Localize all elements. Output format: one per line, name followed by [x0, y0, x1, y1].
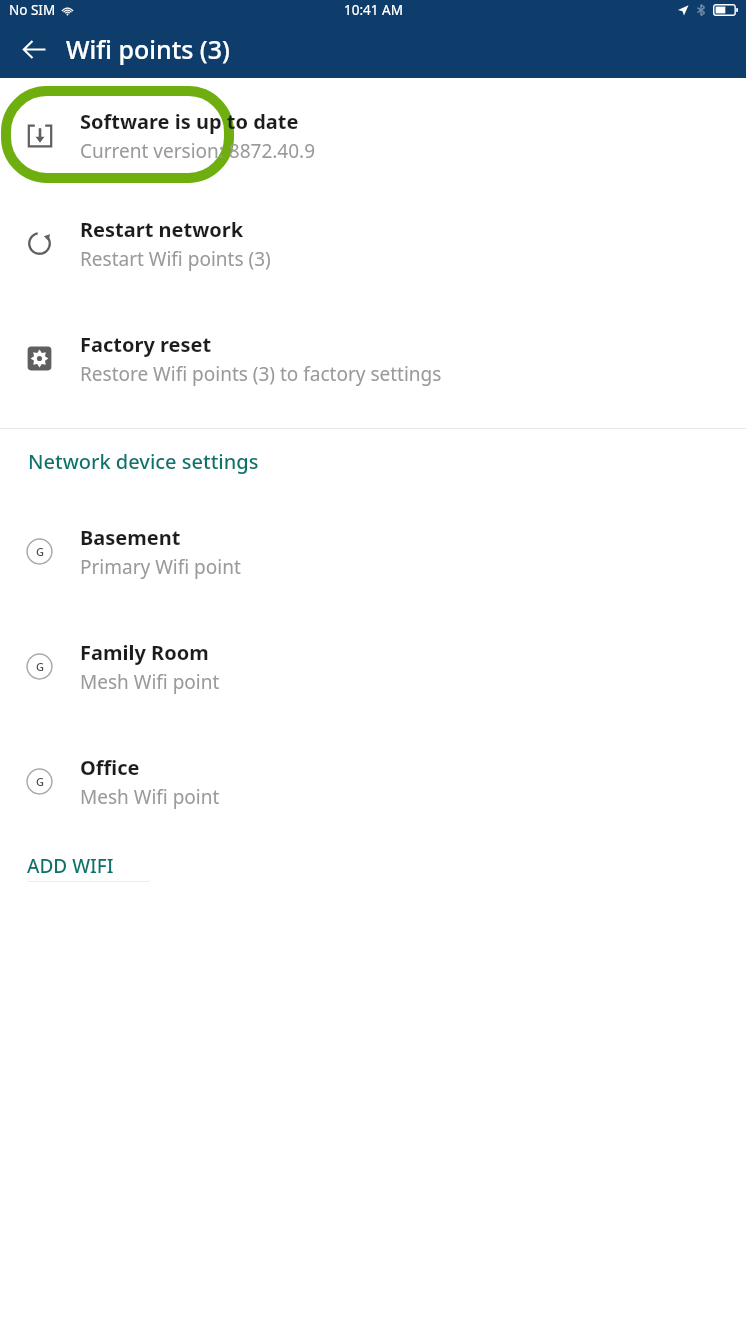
staticText: Mesh Wifi point: [80, 784, 220, 810]
staticText: G: [36, 774, 44, 789]
staticText: Current version: 8872.40.9: [80, 138, 316, 164]
button[interactable]: G: [0, 724, 746, 839]
staticText: Basement: [80, 524, 181, 551]
button[interactable]: Restart network: [0, 186, 746, 301]
staticText: 10:41 AM: [344, 1, 403, 19]
staticText: G: [36, 544, 44, 559]
staticText: Restore Wifi points (3) to factory setti…: [80, 361, 442, 387]
staticText: ADD WIFI POINT: [27, 853, 150, 881]
staticText: Office: [80, 754, 140, 781]
staticText: Restart network: [80, 216, 244, 243]
button[interactable]: Back: [10, 25, 58, 73]
staticText: Network device settings: [28, 448, 259, 475]
staticText: Mesh Wifi point: [80, 669, 220, 695]
button[interactable]: Software is up to date: [0, 86, 746, 186]
staticText: Factory reset: [80, 331, 212, 358]
button[interactable]: G: [0, 494, 746, 609]
button[interactable]: ADD WIFI POINT: [27, 853, 150, 881]
staticText: Family Room: [80, 639, 209, 666]
staticText: Wifi points (3): [66, 32, 230, 66]
staticText: Restart Wifi points (3): [80, 246, 271, 272]
staticText: Software is up to date: [80, 108, 299, 135]
button[interactable]: Factory reset: [0, 301, 746, 416]
staticText: G: [36, 659, 44, 674]
staticText: No SIM: [9, 1, 56, 19]
staticText: Primary Wifi point: [80, 554, 241, 580]
button[interactable]: G: [0, 609, 746, 724]
